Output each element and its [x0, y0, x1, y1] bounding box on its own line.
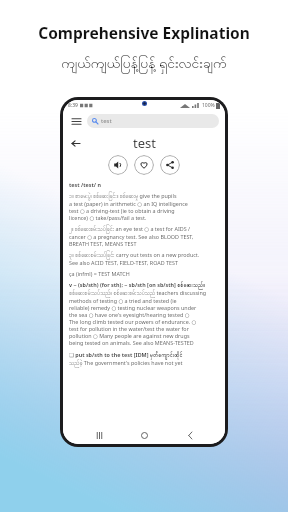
button[interactable]: Home	[134, 426, 154, 444]
staticText: test ○ a driving-test (ie to obtain a dr…	[69, 207, 175, 214]
button[interactable]: Add to favourites	[134, 155, 154, 175]
staticText: cancer ○ a pregnancy test. See also BLOO…	[69, 233, 194, 240]
staticText: 100%	[202, 102, 215, 109]
staticText: test for pollution in the water/test the…	[69, 325, 189, 332]
staticText: ၁။ စာမေးပွဲ၊ စစ်ဆေးခြင်း။ စစ်ဆေးမှု give…	[69, 192, 177, 200]
staticText: test /test/ n	[69, 181, 101, 188]
staticText: သည်ခဲ့ The government's policies have no…	[69, 359, 183, 367]
staticText: pollution ○ Many people are against new …	[69, 332, 190, 339]
staticText: စစ်ဆေးစမ်းသပ်သည်။ စစ်ဆေးစမ်းသပ်သည် teach…	[69, 289, 207, 297]
staticText: The long climb tested our powers of endu…	[69, 318, 197, 325]
staticText: the sea ○ have one's eyesight/hearing te…	[69, 311, 190, 318]
staticText: test	[133, 134, 156, 152]
staticText: reliable) remedy ○ testing nuclear weapo…	[69, 304, 197, 311]
staticText: ça (infml) = TEST MATCH	[69, 270, 130, 277]
staticText: BREATH TEST, MEANS TEST	[69, 240, 137, 247]
staticText: being tested on animals. See also MEANS-…	[69, 339, 194, 346]
staticText: v ~ (sb/sth) (for sth); ~ sb/sth [on sb/…	[69, 281, 206, 289]
button[interactable]: Share	[160, 155, 180, 175]
button[interactable]: Menu	[69, 114, 83, 128]
staticText: a test (paper) in arithmetic ○ an IQ int…	[69, 200, 188, 207]
staticText: ကျယ်ကျယ်ပြန့်ပြန့် ရှင်းလင်းချက်	[61, 53, 227, 75]
staticText: ၃။ စစ်ဆေးစမ်းသပ်ခြင်း carry out tests on…	[69, 251, 200, 259]
button[interactable]: Back	[67, 135, 83, 151]
staticText: ❏ put sb/sth to the test [IDM] မှတ်ဲကျော…	[69, 351, 183, 359]
staticText: Comprehensive Explination	[38, 22, 250, 43]
button[interactable]: Recent apps	[89, 426, 109, 444]
button[interactable]: test	[87, 114, 219, 128]
staticText: methods of testing ○ a tried and tested …	[69, 297, 177, 304]
staticText: ၂။ စစ်ဆေးစမ်းသပ်ခြင်း an eye test ○ a te…	[69, 225, 191, 233]
staticText: See also ACID TEST, FIELD-TEST, ROAD TES…	[69, 259, 179, 266]
button[interactable]: Play pronunciation	[108, 155, 128, 175]
button[interactable]: Back	[180, 426, 200, 444]
staticText: 8:39	[68, 102, 78, 109]
staticText: test	[101, 117, 112, 125]
staticText: licence) ○ take/pass/fail a test.	[69, 214, 147, 221]
